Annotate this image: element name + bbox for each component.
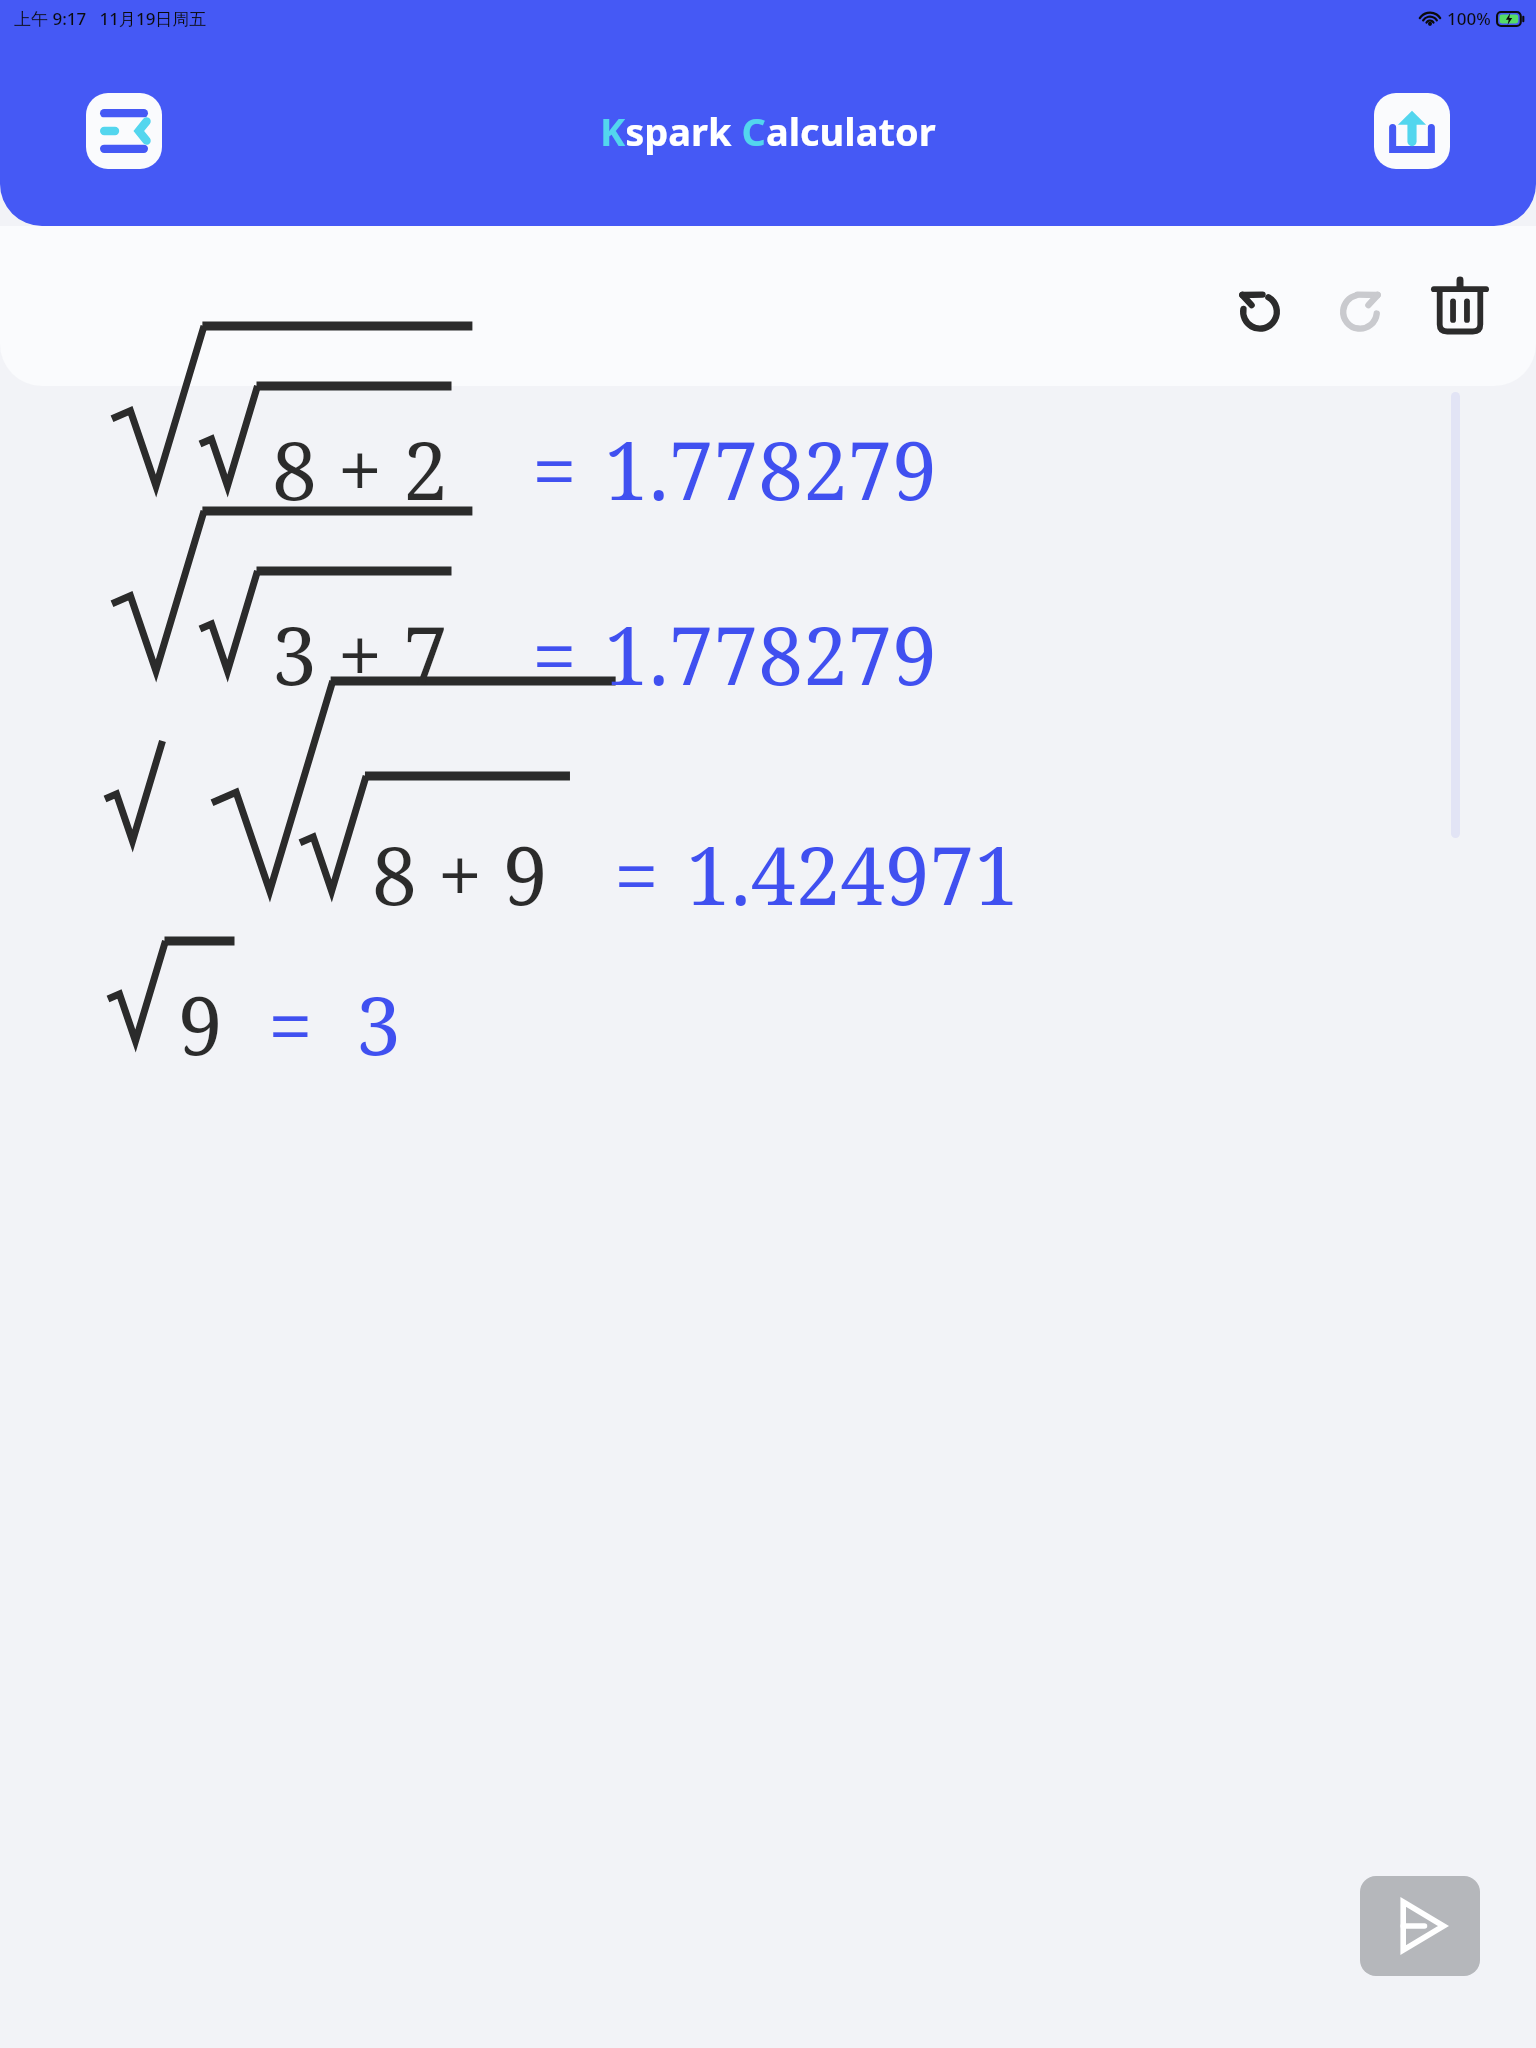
button[interactable]: Run calculation (1360, 1876, 1480, 1976)
staticText: = (532, 599, 577, 708)
button[interactable]: Undo (1210, 256, 1310, 356)
button[interactable]: Menu (86, 93, 162, 169)
staticText: 9 (178, 969, 223, 1078)
staticText: 3 (356, 969, 401, 1078)
staticText: 100% (1447, 7, 1491, 30)
staticText: 1.778279 (604, 599, 938, 708)
staticText: 3 + 7 (272, 599, 448, 708)
staticText: Kspark Calculator (600, 105, 936, 157)
button[interactable]: Share (1374, 93, 1450, 169)
staticText: 1.424971 (686, 819, 1020, 928)
button[interactable]: Redo (1310, 256, 1410, 356)
staticText: 1.778279 (604, 414, 938, 523)
staticText: 8 + 9 (372, 819, 548, 928)
button[interactable]: Clear all (1410, 256, 1510, 356)
staticText: = (532, 414, 577, 523)
staticText: 上午 9:17 11月19日周五 (14, 7, 207, 30)
staticText: = (268, 969, 313, 1078)
staticText: = (614, 819, 659, 928)
staticText: 8 + 2 (272, 414, 448, 523)
